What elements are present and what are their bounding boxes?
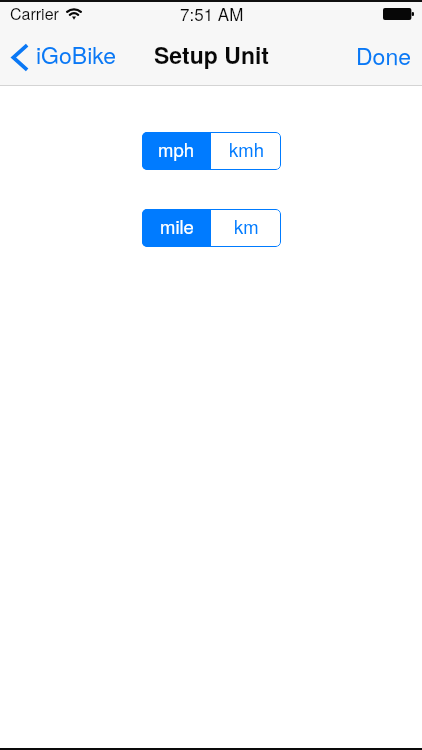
staticText: kmh <box>229 136 264 162</box>
other: Wi-Fi <box>66 8 82 20</box>
staticText: iGoBike <box>36 38 117 71</box>
button[interactable]: mile <box>142 209 211 247</box>
staticText: 7:51 AM <box>180 1 244 25</box>
other: Battery full <box>383 8 414 20</box>
staticText: Carrier <box>10 2 59 25</box>
button[interactable]: km <box>211 209 281 247</box>
button[interactable]: mph <box>142 132 211 170</box>
button[interactable]: Back to iGoBike <box>0 30 125 85</box>
button[interactable]: Done <box>342 29 422 85</box>
staticText: Done <box>356 39 411 72</box>
staticText: mph <box>158 136 195 162</box>
staticText: Setup Unit <box>154 38 269 71</box>
staticText: mile <box>160 213 194 239</box>
button[interactable]: kmh <box>211 132 281 170</box>
staticText: km <box>234 213 259 239</box>
